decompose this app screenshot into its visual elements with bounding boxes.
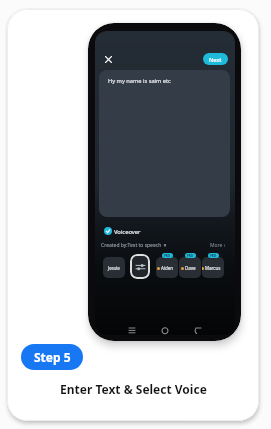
button[interactable]: Dave	[179, 257, 201, 278]
button[interactable]: Marcus	[202, 257, 224, 278]
staticText: Dave	[185, 265, 196, 271]
staticText: Step 5	[34, 349, 71, 365]
button[interactable]: Step 5	[21, 344, 83, 370]
staticText: Enter Text & Select Voice	[60, 381, 207, 397]
staticText: Voiceover	[114, 228, 141, 236]
staticText: PRO	[164, 254, 171, 258]
button[interactable]: Next	[203, 53, 228, 65]
staticText: Aiden	[161, 265, 174, 271]
button[interactable]: Aiden	[156, 257, 178, 278]
staticText: Marcus	[205, 265, 221, 271]
staticText: More ›	[210, 242, 226, 249]
staticText: Created by:Text to speech ▾	[101, 242, 167, 249]
button[interactable]	[105, 56, 112, 63]
staticText: Hy my name is saim etc	[108, 77, 171, 85]
staticText: Next	[209, 56, 222, 63]
staticText: PRO	[210, 254, 217, 258]
staticText: Jessie	[108, 265, 120, 271]
button[interactable]	[130, 254, 150, 279]
staticText: PRO	[187, 254, 194, 258]
button[interactable]: Jessie	[103, 257, 125, 278]
